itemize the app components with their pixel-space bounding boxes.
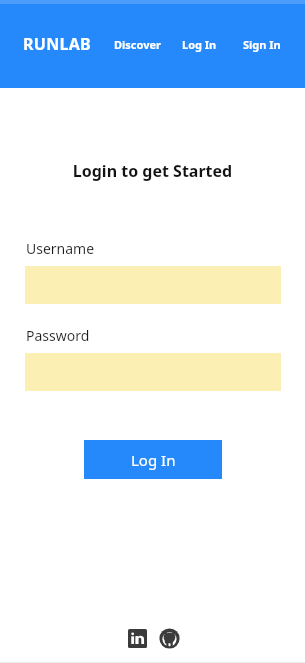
staticText: Sign In bbox=[243, 37, 281, 52]
button[interactable]: RUNLAB bbox=[23, 33, 92, 55]
button[interactable]: Sign In bbox=[239, 31, 285, 58]
button[interactable]: Log In bbox=[178, 31, 221, 58]
staticText: Login to get Started bbox=[0, 160, 305, 182]
staticText: Discover bbox=[114, 37, 161, 52]
staticText: RUNLAB bbox=[23, 33, 92, 55]
button[interactable]: GitHub bbox=[158, 627, 180, 649]
button[interactable]: Log In bbox=[84, 440, 222, 479]
button[interactable]: Discover bbox=[110, 31, 165, 58]
button[interactable]: LinkedIn bbox=[126, 627, 148, 649]
staticText: Log In bbox=[182, 37, 217, 52]
staticText: Username bbox=[26, 239, 95, 258]
staticText: Log In bbox=[131, 450, 176, 470]
staticText: Password bbox=[26, 326, 90, 345]
